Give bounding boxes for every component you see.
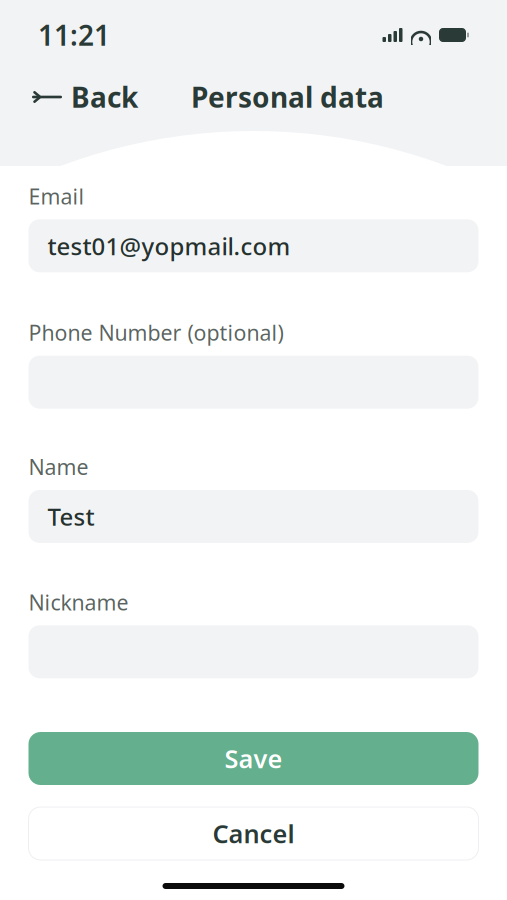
staticText: test01@yopmail.com — [47, 230, 290, 262]
staticText: Personal data — [191, 78, 384, 116]
staticText: Cancel — [212, 817, 294, 850]
staticText: Nickname — [28, 588, 128, 616]
staticText: Email — [28, 182, 84, 210]
button[interactable]: Back — [28, 70, 142, 124]
staticText: Back — [71, 78, 138, 116]
staticText: 11:21 — [38, 16, 110, 54]
button[interactable]: Cancel — [28, 807, 478, 860]
staticText: Save — [224, 742, 282, 775]
staticText: Phone Number (optional) — [28, 318, 283, 347]
staticText: Test — [47, 501, 94, 532]
button[interactable]: Save — [28, 732, 478, 785]
staticText: Name — [28, 453, 88, 481]
